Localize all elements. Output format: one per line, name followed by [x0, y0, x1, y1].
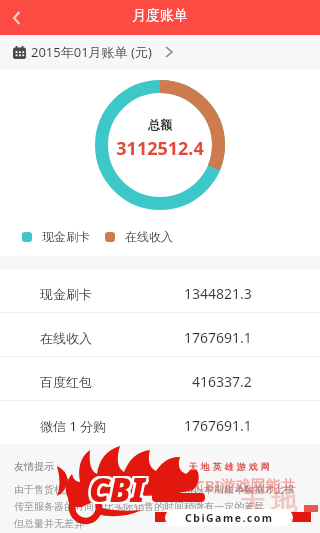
staticText: CBI: [89, 469, 145, 514]
staticText: CBI: [91, 465, 147, 510]
staticText: 在线收入: [40, 330, 92, 346]
button[interactable]: 现金刷卡: [0, 269, 320, 312]
staticText: 总额: [0, 117, 320, 132]
staticText: 现金刷卡: [40, 286, 92, 302]
staticText: CbiGame.com: [185, 511, 274, 525]
staticText: 传至服务器的时间会比实际销售的时间稍微有一定的差异: [14, 500, 264, 513]
staticText: 上CBI游戏网能共: [180, 475, 296, 495]
staticText: 1767691.1: [184, 328, 252, 347]
staticText: CBI: [91, 469, 147, 514]
staticText: CBI: [87, 469, 143, 514]
staticText: 月度账单: [132, 7, 188, 25]
staticText: CBI: [89, 467, 145, 512]
staticText: 百度红包: [40, 374, 92, 390]
staticText: 1767691.1: [184, 416, 252, 435]
staticText: 但总量并无差异: [14, 517, 84, 530]
staticText: 现金刷卡: [42, 229, 90, 244]
button[interactable]: CbiGame.com: [165, 509, 293, 526]
staticText: CBI: [89, 465, 145, 510]
button[interactable]: [0, 1, 34, 35]
button[interactable]: 微信 1 分购: [0, 401, 320, 444]
staticText: CBI: [91, 467, 147, 512]
button[interactable]: 百度红包: [0, 357, 320, 400]
staticText: 天地: [236, 486, 300, 519]
staticText: 1344821.3: [184, 284, 252, 303]
button[interactable]: 在线收入: [0, 313, 320, 356]
staticText: 天地英雄游戏网: [187, 461, 271, 472]
staticText: 微信 1 分购: [40, 417, 107, 435]
staticText: 416337.2: [192, 372, 252, 391]
staticText: 由于售货机上报数据的时间或有延迟，所以本期账单数据才上报: [14, 483, 294, 496]
staticText: 在线收入: [125, 229, 173, 244]
button[interactable]: 2015年01月账单 (元): [0, 35, 320, 69]
staticText: 友情提示: [14, 460, 54, 473]
staticText: CBI: [87, 465, 143, 510]
staticText: 3112512.4: [0, 136, 320, 161]
staticText: CBI: [87, 467, 143, 512]
staticText: 2015年01月账单 (元): [31, 43, 156, 61]
